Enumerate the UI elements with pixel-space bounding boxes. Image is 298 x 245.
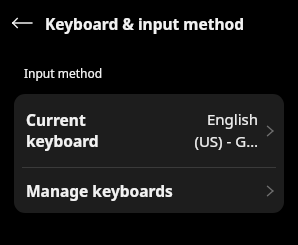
staticText: Manage keyboards	[26, 180, 173, 201]
staticText: Current keyboard	[26, 109, 99, 152]
button[interactable]: Back	[6, 7, 38, 39]
staticText: Input method	[24, 65, 103, 81]
button[interactable]: Manage keyboards	[14, 168, 284, 213]
staticText: English (US) - G…	[194, 109, 258, 152]
button[interactable]: Current keyboard	[14, 94, 284, 167]
staticText: Keyboard & input method	[45, 13, 244, 34]
